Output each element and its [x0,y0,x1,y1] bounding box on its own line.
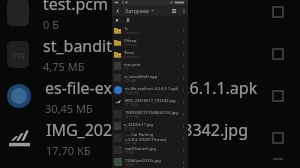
staticText: 2 объекта [124,31,140,35]
button[interactable]: st_bandit(hit).ogg [112,72,188,84]
staticText: IMG_20210617_193342.jpg [46,119,249,141]
button[interactable]: Item menu [180,135,187,142]
button[interactable]: Item menu [180,159,187,166]
staticText: 0 Б [124,67,129,71]
button[interactable]: 724hfyoo0333c.jpg [112,156,188,168]
button[interactable]: Item menu [180,111,187,118]
staticText: ogg [12,50,25,60]
staticText: 17,70 КБ [46,143,91,158]
staticText: 50,6 МБ [125,142,138,144]
staticText: 30,45 МБ [45,101,93,116]
button[interactable]: Item menu [180,39,187,46]
button[interactable]: ......Car Parking v-4.8.3.3/300119.mod a… [112,132,188,144]
button[interactable]: Item menu [180,63,187,70]
button[interactable]: Обзор [112,36,188,48]
staticText: 0 Б [43,17,59,32]
button[interactable]: Item menu [180,75,187,82]
staticText: 1 объект [124,43,138,47]
staticText: Обзор [124,38,137,43]
staticText: 30,45 МБ [125,91,139,95]
staticText: 1c [124,26,129,31]
staticText: 17,70 КБ [125,103,138,107]
button[interactable]: Downloads [125,17,131,23]
staticText: top90carinfo.jpg [125,146,157,151]
button[interactable]: Toggle view [169,6,178,15]
button[interactable]: Item menu [180,147,187,154]
staticText: 3 объекта [124,55,140,59]
staticText: es-file-explorer-4.2.6.1.1.apk [125,86,179,91]
staticText: 4,75 МБ [43,59,85,74]
button[interactable]: More options [180,7,187,14]
button[interactable]: Item menu [180,87,187,94]
staticText: 33 КБ [125,163,134,167]
staticText: 79 КБ [125,151,134,155]
button[interactable]: a_32820c11.jpg [112,120,188,132]
button[interactable]: top90carinfo.jpg [112,144,188,156]
staticText: ......Car Parking v-4.8.3.3/300119.mod a… [125,132,180,142]
button[interactable]: Фото [112,48,188,60]
button[interactable]: test.pcm [112,60,188,72]
staticText: st_bandits(hit).ogg [43,35,183,57]
button[interactable]: Home [114,17,120,23]
staticText: test.pcm [43,0,109,15]
staticText: 15893081791944634192.jpg [125,110,178,115]
staticText: 724hfyoo0333c.jpg [125,158,161,163]
staticText: > [121,18,124,23]
staticText: st_bandit(hit).ogg [124,74,158,79]
staticText: a_32820c11.jpg [124,122,153,127]
button[interactable]: Item menu [180,51,187,58]
button[interactable]: IMG_20210617_193342.jpg [112,96,188,108]
staticText: Фото [124,50,134,55]
button[interactable]: 15893081791944634192.jpg [112,108,188,120]
button[interactable]: 1c [112,24,188,36]
button[interactable]: Item menu [180,27,187,34]
staticText: Загрузки [125,7,149,14]
staticText: 4,75 МБ [124,79,137,83]
staticText: IMG_20210617_193342.jpg [125,98,176,103]
staticText: es-file-explorer-4.2.6.1.1.apk [45,77,258,99]
button[interactable]: Item menu [180,99,187,106]
staticText: test.pcm [124,62,141,67]
staticText: 62,3 КБ [124,127,136,131]
button[interactable]: Загрузки [125,7,154,14]
button[interactable]: es-file-explorer-4.2.6.1.1.apk [112,84,188,96]
button[interactable]: Back [114,7,122,15]
staticText: 54,11 КБ [125,115,138,119]
button[interactable]: Item menu [180,123,187,130]
